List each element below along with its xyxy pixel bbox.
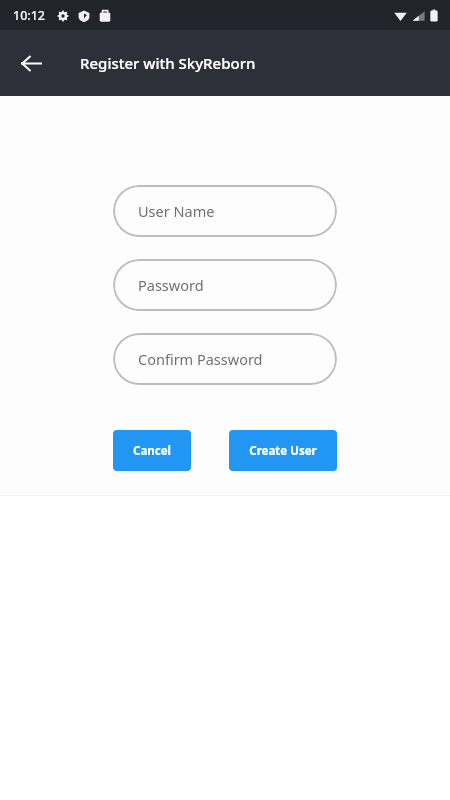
staticText: Register with SkyReborn: [80, 53, 256, 73]
staticText: Create User: [249, 443, 317, 459]
staticText: 10:12: [13, 7, 46, 24]
button[interactable]: Back: [9, 41, 53, 85]
button[interactable]: Create User: [229, 430, 337, 471]
staticText: User Name: [138, 201, 215, 221]
staticText: Password: [138, 275, 204, 295]
staticText: Cancel: [133, 443, 171, 459]
staticText: Confirm Password: [138, 349, 263, 369]
button[interactable]: Confirm Password: [113, 333, 337, 385]
button[interactable]: Cancel: [113, 430, 191, 471]
button[interactable]: User Name: [113, 185, 337, 237]
button[interactable]: Password: [113, 259, 337, 311]
